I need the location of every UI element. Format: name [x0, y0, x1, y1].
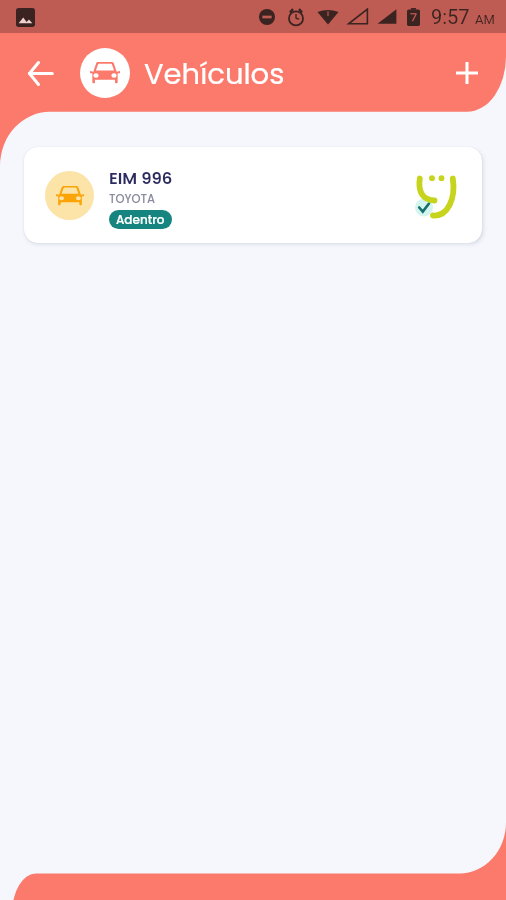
- staticText: 9:57: [431, 5, 470, 28]
- button[interactable]: EIM 996: [24, 147, 482, 243]
- staticText: Vehículos: [144, 54, 285, 95]
- staticText: Adentro: [116, 211, 165, 228]
- button[interactable]: Add vehicle: [445, 51, 489, 95]
- button[interactable]: Back: [18, 51, 62, 95]
- other: Verified vehicle: [414, 174, 463, 225]
- staticText: TOYOTA: [109, 191, 155, 207]
- staticText: EIM 996: [109, 167, 173, 190]
- staticText: AM: [475, 12, 495, 27]
